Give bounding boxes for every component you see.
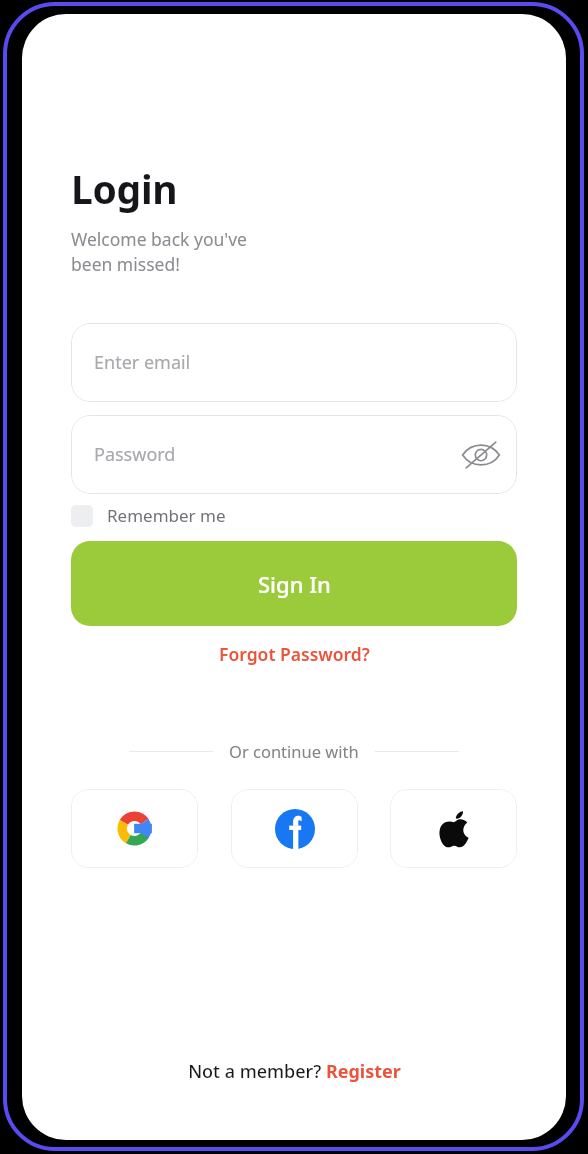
staticText: Login xyxy=(71,162,178,215)
button[interactable]: Sign in with Facebook xyxy=(231,789,358,868)
staticText: Password xyxy=(94,442,176,467)
button[interactable]: Enter email xyxy=(71,323,517,402)
button[interactable]: Sign in with Google xyxy=(71,789,198,868)
staticText: Remember me xyxy=(107,504,226,527)
staticText: Or continue with xyxy=(229,740,359,762)
button[interactable]: Sign in with Apple xyxy=(390,789,517,868)
button[interactable]: Password xyxy=(71,415,517,494)
button[interactable]: Sign In xyxy=(71,541,517,626)
staticText: Enter email xyxy=(94,350,191,375)
staticText: Welcome back you've been missed! xyxy=(71,227,247,276)
button[interactable]: Remember me xyxy=(71,504,226,527)
button[interactable]: Not a member? Register xyxy=(178,1055,411,1088)
button[interactable]: Show password xyxy=(459,433,503,477)
staticText: Sign In xyxy=(258,569,331,599)
button[interactable]: Forgot Password? xyxy=(209,638,380,670)
